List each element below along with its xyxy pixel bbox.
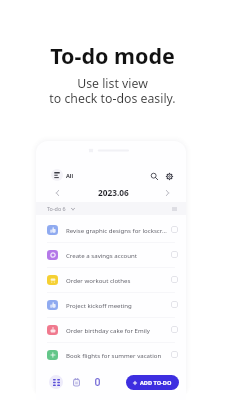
staticText: Revise graphic designs for lockscree... [66, 226, 169, 234]
button[interactable]: Book flights for summer vacation [36, 342, 186, 367]
button[interactable]: ADD TO-DO [126, 375, 179, 390]
staticText: Order workout clothes [66, 276, 169, 284]
staticText: 2023.06 [98, 187, 129, 198]
button[interactable]: Settings [163, 170, 176, 183]
button[interactable]: Previous month [51, 186, 64, 199]
button[interactable]: Order workout clothes [36, 267, 186, 292]
button[interactable]: Create a savings account [36, 242, 186, 267]
button[interactable]: Grid view [49, 375, 63, 389]
staticText: Book flights for summer vacation [66, 351, 169, 359]
staticText: Use list view to check to-dos easily. [49, 75, 176, 107]
staticText: To-do mode [50, 41, 175, 70]
button[interactable]: Next month [161, 186, 174, 199]
staticText: ADD TO-DO [140, 379, 172, 387]
staticText: Order birthday cake for Emily [66, 326, 169, 334]
button[interactable]: Filter [51, 169, 63, 181]
staticText: Project kickoff meeting [66, 301, 169, 309]
button[interactable]: Project kickoff meeting [36, 292, 186, 317]
button[interactable]: Card view [90, 375, 104, 389]
button[interactable]: Search [148, 170, 161, 183]
staticText: Create a savings account [66, 251, 169, 259]
button[interactable]: Checklist [69, 375, 83, 389]
staticText: All [66, 172, 74, 180]
button[interactable]: Revise graphic designs for lockscree... [36, 217, 186, 242]
staticText: To-do 6 [47, 205, 66, 212]
button[interactable]: Order birthday cake for Emily [36, 317, 186, 342]
